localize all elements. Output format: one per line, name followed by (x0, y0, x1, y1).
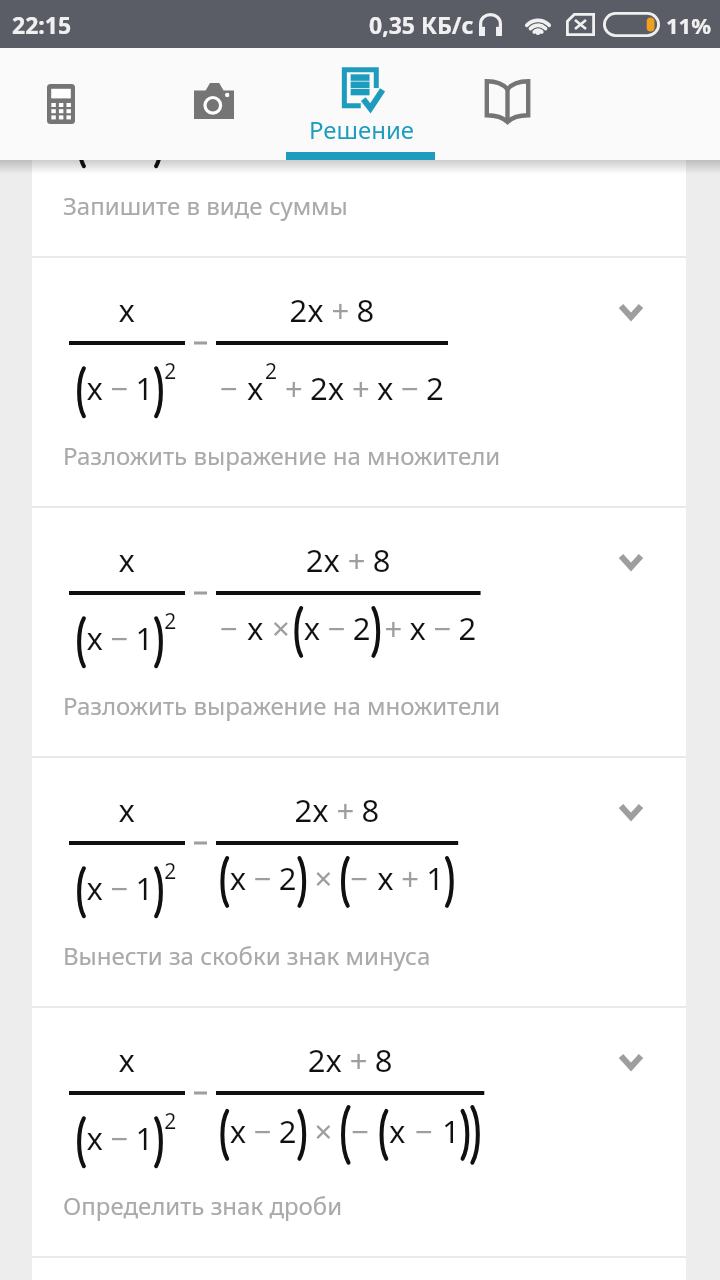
button[interactable]: Expand step (32, 258, 686, 506)
button[interactable]: Book (433, 48, 582, 160)
other: Expand step (618, 553, 644, 570)
other: Expand step (618, 1053, 644, 1070)
button[interactable]: Camera (135, 48, 284, 160)
staticText: 0,35 КБ/с (369, 9, 474, 40)
button[interactable]: Запишите в виде суммы (32, 160, 686, 256)
staticText: Решение (309, 113, 415, 146)
staticText: Запишите в виде суммы (63, 189, 348, 222)
staticText: Разложить выражение на множители (63, 439, 501, 472)
staticText: 11% (666, 10, 712, 40)
other: Expand step (618, 303, 644, 320)
button[interactable]: Expand step (32, 758, 686, 1006)
button[interactable]: Calculator (0, 48, 135, 160)
staticText: Разложить выражение на множители (63, 689, 501, 722)
other: Expand step (618, 803, 644, 820)
button[interactable]: Expand step (32, 1008, 686, 1256)
staticText: Вынести за скобки знак минуса (63, 939, 431, 972)
button[interactable]: Решение (287, 48, 436, 160)
staticText: 22:15 (12, 9, 72, 40)
button[interactable]: Expand step (32, 508, 686, 756)
staticText: Определить знак дроби (63, 1189, 343, 1222)
